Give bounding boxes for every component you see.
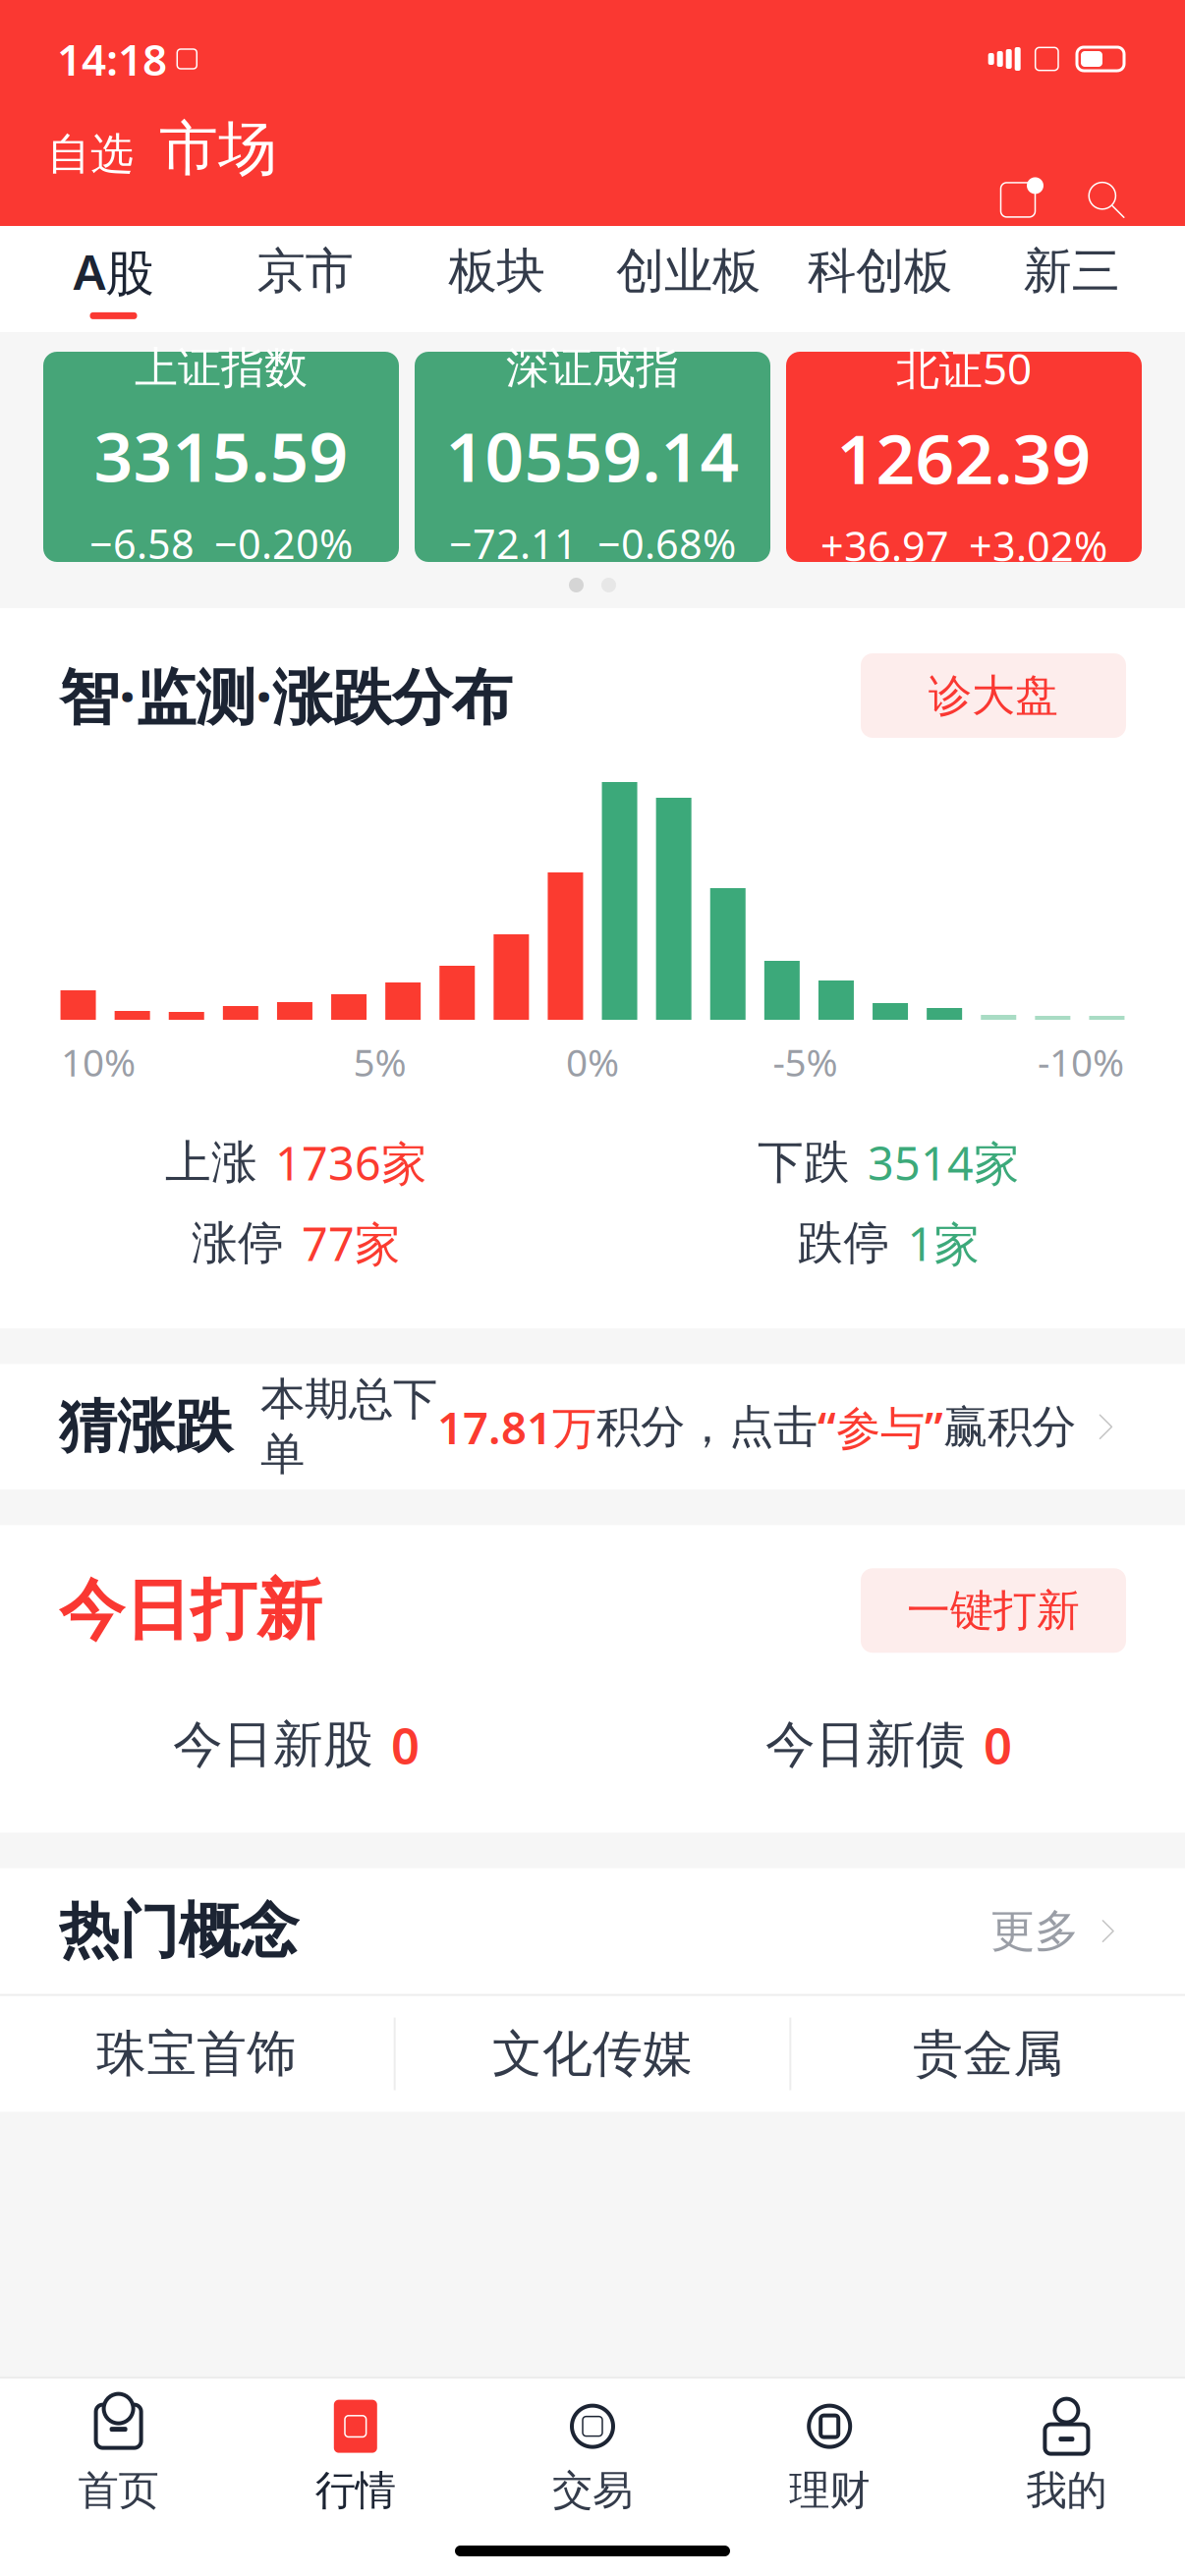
button[interactable]: 北证50 [786,352,1142,562]
staticText: 0% [566,1036,619,1087]
staticText: 板块 [449,241,545,301]
staticText: 自选 [47,127,134,180]
button[interactable]: 行情 [237,2388,474,2526]
staticText: 今日打新 [59,1570,322,1651]
staticText: 首页 [78,2466,159,2515]
staticText: −0.68% [597,516,736,570]
staticText: 我的 [1026,2466,1107,2515]
staticText: 上涨 [165,1134,257,1191]
staticText: 14:18 [57,30,167,88]
button[interactable]: 一键打新 [861,1568,1126,1653]
staticText: 新三 [1023,241,1120,301]
staticText: 今日新股 [173,1714,373,1775]
staticText: 1736家 [275,1132,427,1193]
staticText: 赢积分 [943,1400,1076,1454]
button[interactable]: 消息 [987,168,1049,231]
staticText: 诊大盘 [929,669,1058,722]
staticText: 10% [61,1036,136,1087]
staticText: 5% [353,1036,406,1087]
button[interactable]: 自选 [47,127,134,180]
staticText: 智·监测·涨跌分布 [59,656,512,736]
staticText: 文化传媒 [492,2023,693,2084]
staticText: 创业板 [616,241,761,301]
staticText: 1262.39 [837,412,1091,503]
staticText: 一键打新 [907,1584,1080,1637]
button[interactable]: 更多 [990,1904,1126,1958]
button[interactable]: 理财 [711,2388,948,2526]
button[interactable]: 深证成指 [415,352,770,562]
button[interactable]: 市场 [159,113,277,185]
button[interactable]: 贵金属 [791,1996,1185,2112]
staticText: 10559.14 [446,410,739,501]
staticText: 交易 [552,2466,633,2515]
button[interactable]: 搜索 [1075,168,1138,231]
staticText: +36.97 [820,519,949,572]
staticText: 行情 [315,2466,396,2515]
button[interactable]: A股 [18,226,209,332]
button[interactable]: 新三 [976,226,1167,332]
button[interactable]: 诊大盘 [861,653,1126,738]
button[interactable]: 珠宝首饰 [0,1996,394,2112]
staticText: 0 [391,1712,420,1778]
staticText: 3315.59 [94,410,348,501]
staticText: 跌停 [797,1215,890,1271]
staticText: 77家 [302,1213,401,1274]
button[interactable]: 创业板 [592,226,784,332]
staticText: 猜涨跌 [59,1391,233,1462]
staticText: “参与” [818,1397,943,1456]
staticText: 上证指数 [135,341,308,394]
button[interactable]: 猜涨跌 [0,1364,1185,1490]
button[interactable]: 京市 [209,226,401,332]
staticText: −0.20% [214,516,353,570]
staticText: 积分，点击 [596,1400,818,1454]
staticText: -5% [773,1036,838,1087]
staticText: +3.02% [969,519,1107,572]
staticText: 珠宝首饰 [97,2023,297,2084]
staticText: A股 [73,239,154,303]
staticText: 理财 [789,2466,870,2515]
staticText: 0 [984,1712,1012,1778]
staticText: -10% [1038,1036,1124,1087]
button[interactable]: 首页 [0,2388,237,2526]
staticText: 3514家 [868,1132,1020,1193]
staticText: 市场 [159,113,277,185]
button[interactable]: 上证指数 [43,352,399,562]
staticText: 本期总下单 [260,1372,437,1482]
staticText: 科创板 [808,241,952,301]
staticText: 今日新债 [765,1714,966,1775]
staticText: 17.81万 [437,1397,596,1456]
button[interactable]: 科创板 [784,226,976,332]
staticText: 下跌 [758,1134,850,1191]
staticText: −72.11 [449,516,578,570]
staticText: 北证50 [896,339,1032,397]
staticText: 京市 [257,241,353,301]
staticText: 深证成指 [506,341,679,394]
staticText: 热门概念 [59,1894,299,1968]
button[interactable]: 我的 [948,2388,1185,2526]
button[interactable]: 文化传媒 [396,1996,789,2112]
staticText: 1家 [907,1213,980,1274]
staticText: −6.58 [89,516,195,570]
staticText: 涨停 [192,1215,284,1271]
staticText: 贵金属 [913,2023,1063,2084]
button[interactable]: 交易 [474,2388,711,2526]
button[interactable]: 板块 [401,226,592,332]
staticText: 更多 [990,1904,1079,1958]
